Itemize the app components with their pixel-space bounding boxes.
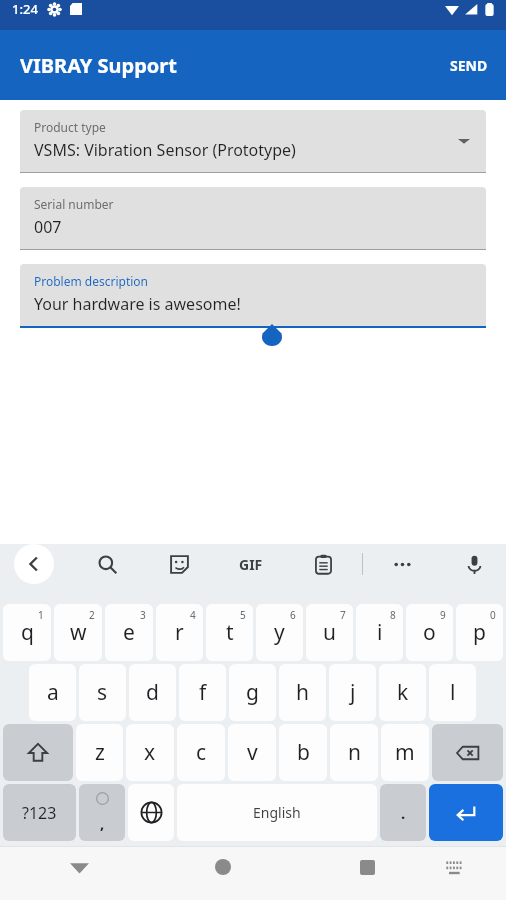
staticText: 9 [440, 608, 446, 622]
staticText: 4 [190, 608, 196, 622]
staticText: . [401, 803, 406, 823]
button[interactable]: Change language [128, 784, 174, 841]
button[interactable]: g [229, 664, 276, 721]
button[interactable]: z [76, 724, 123, 781]
button[interactable]: Back [58, 846, 100, 888]
staticText: a [47, 678, 59, 707]
staticText: VIBRAY Support [20, 52, 177, 79]
button[interactable]: Voice input [456, 546, 492, 582]
staticText: 1:24 [12, 0, 38, 18]
button[interactable]: . [380, 784, 426, 841]
button[interactable]: s [79, 664, 126, 721]
staticText: x [144, 738, 156, 767]
staticText: , [100, 813, 105, 833]
staticText: 0 [490, 608, 496, 622]
staticText: w [70, 618, 87, 647]
button[interactable]: Switch keyboard [434, 846, 476, 888]
button[interactable]: k [379, 664, 426, 721]
button[interactable]: Backspace [432, 724, 503, 781]
button[interactable]: SEND [432, 42, 506, 89]
button[interactable]: Product type [20, 110, 486, 173]
staticText: f [199, 678, 207, 707]
staticText: c [196, 738, 207, 767]
staticText: GIF [239, 555, 263, 574]
staticText: l [450, 678, 456, 707]
staticText: q [21, 618, 34, 647]
staticText: 3 [140, 608, 146, 622]
button[interactable]: Stickers [161, 546, 197, 582]
button[interactable]: e [105, 604, 153, 661]
staticText: g [246, 678, 259, 707]
staticText: Problem description [34, 273, 149, 289]
staticText: p [473, 618, 486, 647]
staticText: s [97, 678, 108, 707]
button[interactable]: y [256, 604, 303, 661]
button[interactable]: f [179, 664, 226, 721]
staticText: 1 [38, 608, 44, 622]
button[interactable]: Problem description [20, 264, 486, 328]
button[interactable]: GIF [233, 546, 269, 582]
staticText: 2 [89, 608, 95, 622]
staticText: t [226, 618, 234, 647]
button[interactable]: x [126, 724, 174, 781]
staticText: 007 [34, 216, 62, 238]
button[interactable]: c [177, 724, 225, 781]
button[interactable]: n [330, 724, 378, 781]
button[interactable]: Serial number [20, 187, 486, 250]
staticText: VSMS: Vibration Sensor (Prototype) [34, 139, 296, 161]
staticText: o [423, 618, 436, 647]
button[interactable]: a [29, 664, 76, 721]
button[interactable]: ?123 [3, 784, 76, 841]
button[interactable]: q [3, 604, 51, 661]
button[interactable]: u [306, 604, 353, 661]
staticText: n [348, 738, 361, 767]
button[interactable]: Enter [429, 784, 503, 841]
button[interactable]: Search [89, 546, 125, 582]
button[interactable]: English [177, 784, 377, 841]
staticText: d [146, 678, 159, 707]
staticText: h [296, 678, 309, 707]
staticText: b [297, 738, 310, 767]
button[interactable]: h [279, 664, 326, 721]
button[interactable]: Recent apps [346, 846, 388, 888]
button[interactable]: Emoji and comma [79, 784, 125, 841]
button[interactable]: v [228, 724, 276, 781]
staticText: j [350, 678, 356, 707]
button[interactable]: o [406, 604, 453, 661]
button[interactable]: More options [384, 546, 420, 582]
button[interactable]: t [206, 604, 253, 661]
button[interactable]: m [381, 724, 429, 781]
button[interactable]: Clipboard [305, 546, 341, 582]
staticText: ?123 [22, 802, 57, 824]
staticText: v [247, 738, 258, 767]
button[interactable]: p [456, 604, 503, 661]
staticText: r [175, 618, 184, 647]
staticText: k [397, 678, 409, 707]
staticText: y [274, 618, 285, 647]
button[interactable]: l [429, 664, 476, 721]
staticText: Serial number [34, 196, 114, 212]
staticText: u [323, 618, 336, 647]
button[interactable]: r [156, 604, 203, 661]
staticText: 7 [340, 608, 346, 622]
staticText: z [95, 738, 105, 767]
button[interactable]: w [54, 604, 102, 661]
button[interactable]: Back [14, 544, 54, 584]
staticText: English [253, 803, 301, 822]
button[interactable]: Shift [3, 724, 73, 781]
staticText: 5 [240, 608, 246, 622]
button[interactable]: j [329, 664, 376, 721]
staticText: Your hardware is awesome! [34, 293, 241, 315]
button[interactable]: d [129, 664, 176, 721]
staticText: m [395, 738, 415, 767]
button[interactable]: b [279, 724, 327, 781]
button[interactable]: Home [202, 846, 244, 888]
staticText: i [377, 618, 383, 647]
staticText: e [123, 618, 135, 647]
staticText: SEND [450, 56, 488, 75]
staticText: 8 [390, 608, 396, 622]
staticText: Product type [34, 119, 106, 135]
button[interactable]: i [356, 604, 403, 661]
staticText: 6 [290, 608, 296, 622]
